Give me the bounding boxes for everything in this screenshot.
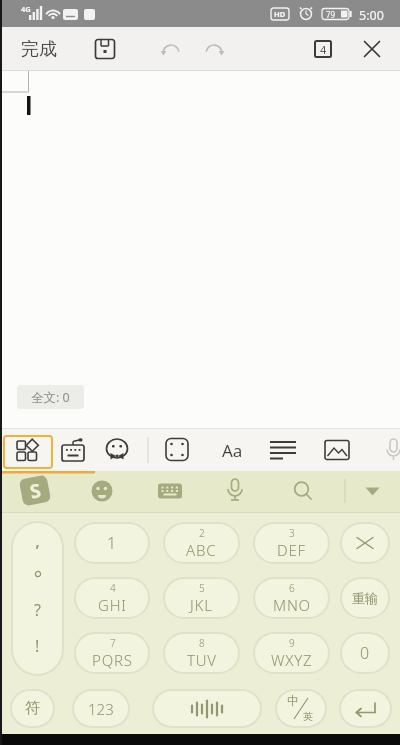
staticText: 5 <box>199 581 205 595</box>
staticText: HD <box>274 9 286 19</box>
button[interactable]: 中 <box>275 689 327 728</box>
staticText: 9 <box>289 636 295 650</box>
button[interactable] <box>360 37 384 61</box>
staticText: 中 <box>287 693 299 708</box>
button[interactable]: 完成 <box>14 27 64 71</box>
staticText: 全文: 0 <box>31 389 70 406</box>
button[interactable] <box>290 478 316 504</box>
button[interactable]: 7 <box>74 632 150 674</box>
staticText: GHI <box>98 595 127 615</box>
button[interactable]: 9 <box>253 632 330 674</box>
button[interactable] <box>152 689 262 728</box>
staticText: MNO <box>273 595 311 615</box>
button[interactable] <box>90 478 116 504</box>
staticText: 4 <box>110 581 116 595</box>
button[interactable] <box>269 437 297 463</box>
staticText: 123 <box>88 699 114 719</box>
staticText: 8 <box>199 636 205 650</box>
button[interactable] <box>158 36 184 62</box>
button[interactable] <box>164 437 190 463</box>
button[interactable]: 重输 <box>340 577 390 619</box>
button[interactable]: 4 <box>314 40 332 58</box>
staticText: Aa <box>222 439 243 462</box>
button[interactable] <box>14 437 40 463</box>
staticText: TUV <box>187 650 217 670</box>
staticText: 0 <box>360 642 370 664</box>
button[interactable]: 4 <box>74 577 150 619</box>
button[interactable] <box>104 437 130 463</box>
staticText: 4 <box>320 42 327 57</box>
button[interactable]: 8 <box>163 632 240 674</box>
staticText: ? <box>34 599 41 621</box>
staticText: 7 <box>110 636 116 650</box>
button[interactable] <box>360 478 386 504</box>
staticText: PQRS <box>92 650 133 670</box>
staticText: , <box>35 527 41 549</box>
button[interactable]: 3 <box>253 522 330 564</box>
staticText: 完成 <box>21 38 57 61</box>
button[interactable]: 0 <box>340 632 390 674</box>
button[interactable] <box>60 437 86 463</box>
staticText: ABC <box>186 540 217 560</box>
button[interactable]: 1 <box>74 522 150 564</box>
button[interactable]: 2 <box>163 522 240 564</box>
button[interactable]: 123 <box>72 689 130 728</box>
button[interactable] <box>339 689 392 728</box>
staticText: 符 <box>25 699 40 718</box>
staticText: ! <box>35 635 40 657</box>
button[interactable] <box>157 478 183 504</box>
staticText: WXYZ <box>271 650 313 670</box>
button[interactable] <box>92 36 118 62</box>
staticText: JKL <box>190 595 213 615</box>
staticText: 5:00 <box>359 7 384 24</box>
button[interactable]: 符 <box>10 689 55 728</box>
staticText: 3 <box>289 526 295 540</box>
staticText: 4G <box>21 4 31 14</box>
button[interactable] <box>340 522 390 564</box>
button[interactable] <box>201 36 227 62</box>
staticText: 英 <box>303 710 313 723</box>
button[interactable]: S <box>19 475 51 506</box>
staticText: 2 <box>199 526 205 540</box>
staticText: 重输 <box>352 590 378 606</box>
button[interactable] <box>222 477 248 505</box>
staticText: 79 <box>326 9 336 20</box>
staticText: DEF <box>277 540 306 560</box>
staticText: 6 <box>289 581 295 595</box>
button[interactable] <box>324 437 350 463</box>
button[interactable]: , <box>11 521 64 676</box>
button[interactable]: 5 <box>163 577 240 619</box>
staticText: S <box>28 477 43 505</box>
staticText: 1 <box>107 532 117 554</box>
button[interactable]: 6 <box>253 577 330 619</box>
button[interactable]: Aa <box>214 432 250 468</box>
